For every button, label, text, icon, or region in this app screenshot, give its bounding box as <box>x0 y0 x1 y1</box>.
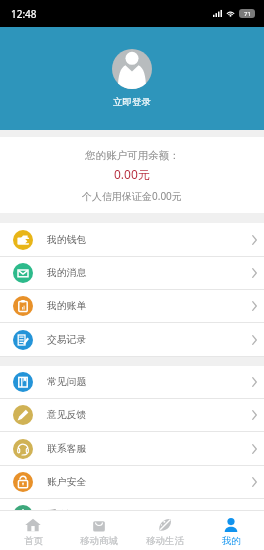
button[interactable]: 意见反馈 <box>0 399 264 432</box>
staticText: 12:48 <box>11 7 37 21</box>
button[interactable]: 移动生活 <box>132 511 198 550</box>
staticText: 联系客服 <box>47 443 87 455</box>
staticText: 交易记录 <box>47 334 87 346</box>
button[interactable]: 系统设置 <box>0 499 264 532</box>
button[interactable]: 我的钱包 <box>0 223 264 257</box>
staticText: 账户安全 <box>47 476 87 488</box>
staticText: 个人信用保证金0.00元 <box>82 189 182 203</box>
staticText: 您的账户可用余额： <box>85 149 180 162</box>
staticText: 我的钱包 <box>47 234 87 246</box>
button[interactable]: 联系客服 <box>0 432 264 466</box>
staticText: 71 <box>244 10 251 18</box>
button[interactable]: 首页 <box>0 511 66 550</box>
button[interactable]: 交易记录 <box>0 323 264 357</box>
staticText: 0.00元 <box>114 166 150 182</box>
staticText: 首页 <box>24 535 43 547</box>
staticText: 立即登录 <box>113 96 151 108</box>
staticText: 我的账单 <box>47 300 87 312</box>
staticText: 常见问题 <box>47 376 87 388</box>
staticText: 系统设置 <box>47 509 87 521</box>
button[interactable]: 账户安全 <box>0 466 264 499</box>
staticText: 我的消息 <box>47 267 87 279</box>
staticText: 意见反馈 <box>47 409 87 421</box>
button[interactable]: 我的消息 <box>0 257 264 290</box>
button[interactable]: 我的 <box>198 511 264 550</box>
button[interactable]: 移动商城 <box>66 511 132 550</box>
staticText: 移动生活 <box>146 535 184 547</box>
staticText: 移动商城 <box>80 535 118 547</box>
button[interactable]: Log in <box>112 49 152 89</box>
staticText: 我的 <box>222 535 241 547</box>
button[interactable]: 常见问题 <box>0 366 264 399</box>
button[interactable]: 我的账单 <box>0 290 264 323</box>
